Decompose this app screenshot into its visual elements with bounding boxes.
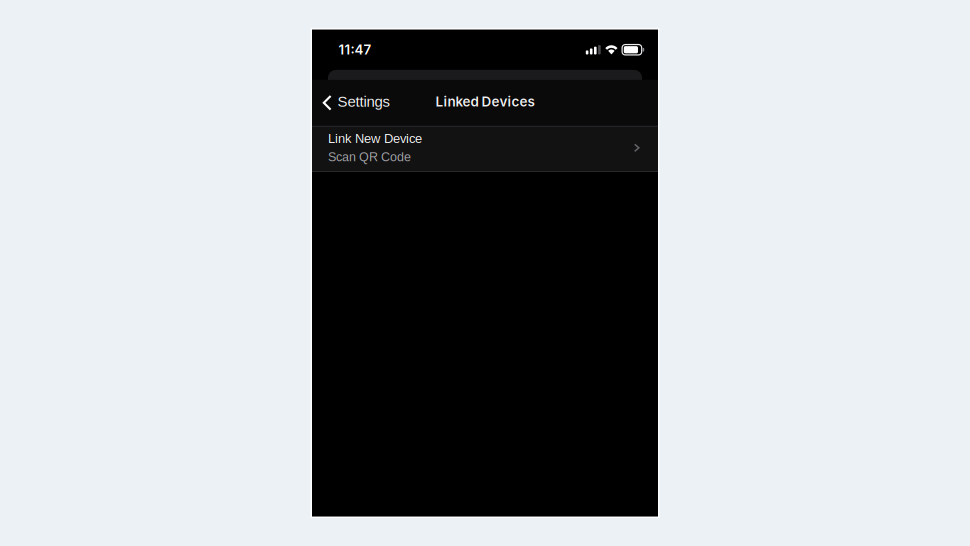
button[interactable]: Settings bbox=[312, 80, 399, 125]
staticText: Settings bbox=[337, 93, 389, 110]
staticText: Linked Devices bbox=[435, 93, 534, 110]
staticText: Link New Device bbox=[328, 131, 422, 146]
button[interactable]: Link New Device bbox=[312, 126, 658, 172]
staticText: 11:47 bbox=[338, 42, 371, 58]
staticText: Scan QR Code bbox=[328, 150, 411, 164]
